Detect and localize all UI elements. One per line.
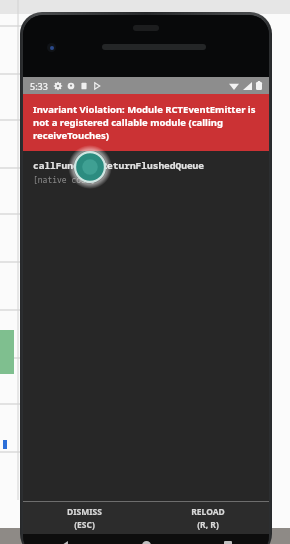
- staticText: 5:33: [30, 80, 48, 92]
- staticText: (R, R): [197, 519, 219, 531]
- staticText: DISMISS: [67, 506, 102, 518]
- staticText: callFunctionReturnFlushedQueue: [33, 159, 205, 172]
- staticText: Invariant Violation: Module RCTEventEmit…: [33, 103, 259, 142]
- button[interactable]: Home: [105, 534, 187, 544]
- button[interactable]: Back: [23, 534, 105, 544]
- button[interactable]: RELOAD: [146, 502, 269, 534]
- button[interactable]: callFunctionReturnFlushedQueue: [23, 151, 269, 185]
- staticText: [native code]: [33, 174, 96, 185]
- staticText: (ESC): [74, 519, 95, 531]
- staticText: RELOAD: [191, 506, 225, 518]
- button[interactable]: DISMISS: [23, 502, 146, 534]
- button[interactable]: Recent apps: [187, 534, 269, 544]
